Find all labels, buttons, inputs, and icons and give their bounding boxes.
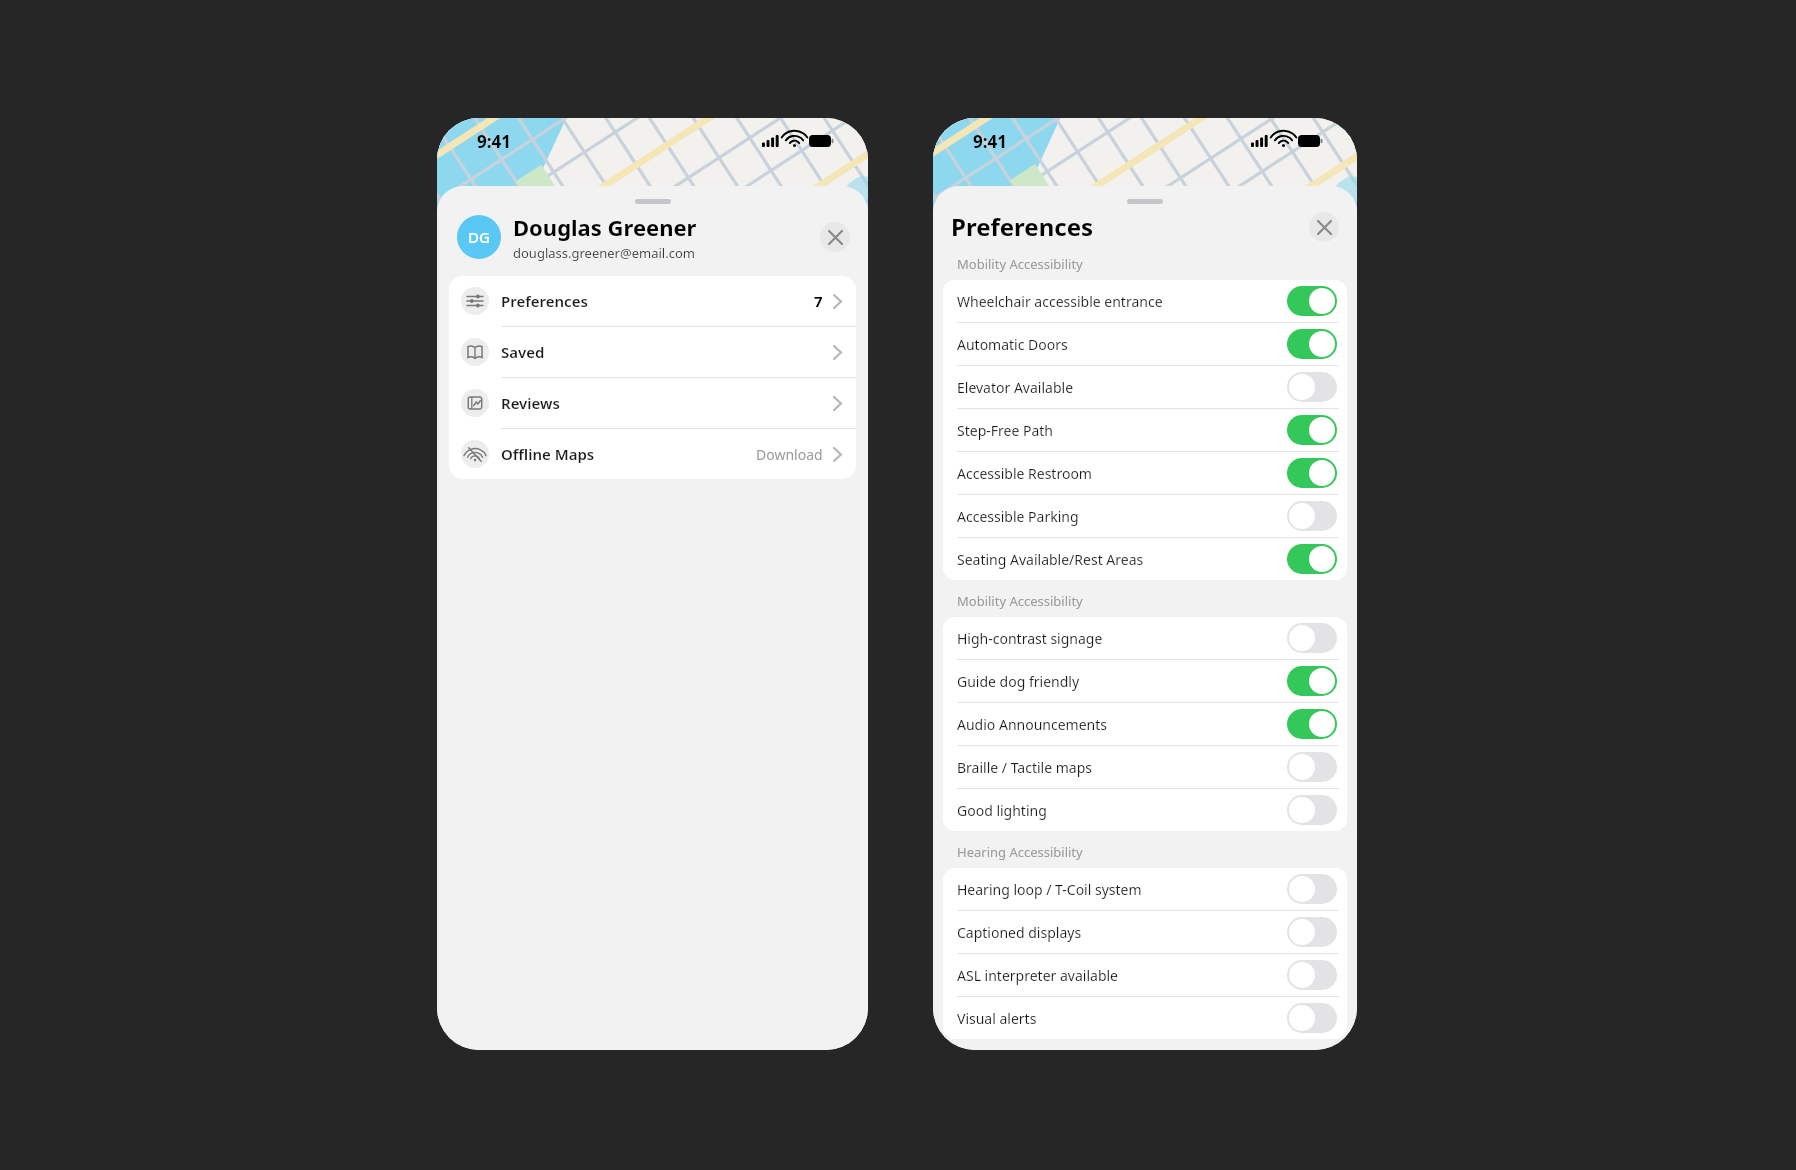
button[interactable]: Off (1287, 501, 1337, 531)
staticText: 7 (814, 291, 823, 311)
staticText: Offline Maps (501, 444, 756, 464)
button[interactable]: Close (1309, 212, 1339, 242)
button[interactable]: Off (1287, 917, 1337, 947)
staticText: Saved (501, 342, 833, 362)
staticText: Preferences (951, 210, 1309, 243)
staticText: Mobility Accessibility (957, 255, 1083, 273)
staticText: Audio Announcements (957, 715, 1287, 734)
button[interactable]: On (1287, 544, 1337, 574)
staticText: 9:41 (973, 130, 1007, 153)
button[interactable]: Close (820, 222, 850, 252)
staticText: Reviews (501, 393, 833, 413)
staticText: Download (756, 445, 823, 464)
button[interactable]: High-contrast signage (943, 617, 1347, 659)
staticText: douglass.greener@email.com (513, 244, 695, 262)
staticText: Step-Free Path (957, 421, 1287, 440)
button[interactable]: Off (1287, 795, 1337, 825)
staticText: Mobility Accessibility (957, 592, 1083, 610)
staticText: ASL interpreter available (957, 966, 1287, 985)
staticText: 9:41 (477, 130, 511, 153)
button[interactable]: Guide dog friendly (943, 660, 1347, 702)
staticText: DG (468, 227, 490, 247)
staticText: Wheelchair accessible entrance (957, 292, 1287, 311)
button[interactable]: On (1287, 329, 1337, 359)
button[interactable]: Good lighting (943, 789, 1347, 831)
button[interactable]: Wheelchair accessible entrance (943, 280, 1347, 322)
button[interactable]: Braille / Tactile maps (943, 746, 1347, 788)
button[interactable]: Step-Free Path (943, 409, 1347, 451)
staticText: Automatic Doors (957, 335, 1287, 354)
staticText: Accessible Parking (957, 507, 1287, 526)
staticText: Elevator Available (957, 378, 1287, 397)
button[interactable]: On (1287, 415, 1337, 445)
button[interactable]: Accessible Restroom (943, 452, 1347, 494)
staticText: Hearing loop / T-Coil system (957, 880, 1287, 899)
button[interactable]: On (1287, 458, 1337, 488)
staticText: Preferences (501, 291, 814, 311)
staticText: Accessible Restroom (957, 464, 1287, 483)
staticText: Douglas Greener (513, 212, 697, 242)
button[interactable]: Hearing loop / T-Coil system (943, 868, 1347, 910)
button[interactable]: Off (1287, 874, 1337, 904)
staticText: Good lighting (957, 801, 1287, 820)
button[interactable]: Elevator Available (943, 366, 1347, 408)
staticText: Hearing Accessibility (957, 843, 1083, 861)
button[interactable]: Off (1287, 752, 1337, 782)
button[interactable]: On (1287, 709, 1337, 739)
staticText: Guide dog friendly (957, 672, 1287, 691)
button[interactable]: ASL interpreter available (943, 954, 1347, 996)
button[interactable]: Automatic Doors (943, 323, 1347, 365)
button[interactable]: Reviews (449, 378, 856, 428)
staticText: Braille / Tactile maps (957, 758, 1287, 777)
button[interactable]: On (1287, 286, 1337, 316)
button[interactable]: Preferences (449, 276, 856, 326)
button[interactable]: Captioned displays (943, 911, 1347, 953)
button[interactable]: Audio Announcements (943, 703, 1347, 745)
button[interactable]: Saved (449, 327, 856, 377)
button[interactable]: Off (1287, 372, 1337, 402)
staticText: Visual alerts (957, 1009, 1287, 1028)
button[interactable]: Accessible Parking (943, 495, 1347, 537)
staticText: Seating Available/Rest Areas (957, 550, 1287, 569)
button[interactable]: Off (1287, 960, 1337, 990)
staticText: Captioned displays (957, 923, 1287, 942)
button[interactable]: Offline Maps (449, 429, 856, 479)
button[interactable]: On (1287, 666, 1337, 696)
staticText: High-contrast signage (957, 629, 1287, 648)
button[interactable]: Seating Available/Rest Areas (943, 538, 1347, 580)
button[interactable]: Visual alerts (943, 997, 1347, 1039)
button[interactable]: Off (1287, 623, 1337, 653)
button[interactable]: Off (1287, 1003, 1337, 1033)
